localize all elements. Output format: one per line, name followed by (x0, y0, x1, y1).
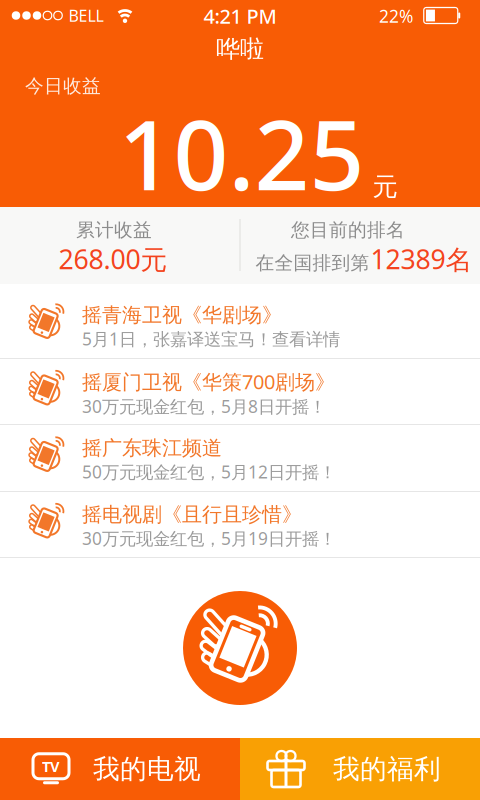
button[interactable]: 摇厦门卫视《华策700剧场》 (0, 359, 480, 425)
staticText: 30万元现金红包，5月19日开摇！ (82, 527, 336, 550)
staticText: 12389名 (370, 241, 472, 277)
staticText: 4:21 PM (203, 3, 276, 29)
staticText: 我的福利 (333, 753, 441, 785)
button[interactable]: 摇广东珠江频道 (0, 425, 480, 492)
staticText: 摇广东珠江频道 (82, 436, 222, 460)
staticText: 268.00元 (58, 241, 167, 277)
staticText: 您目前的排名 (291, 218, 405, 241)
staticText: 在全国排到第 (255, 252, 369, 275)
staticText: 今日收益 (25, 74, 101, 97)
button[interactable]: TV (0, 738, 240, 800)
staticText: 摇电视剧《且行且珍惜》 (82, 502, 302, 527)
staticText: 累计收益 (76, 218, 152, 241)
staticText: 摇厦门卫视《华策700剧场》 (82, 368, 335, 395)
staticText: 哗啦 (216, 34, 264, 64)
staticText: 30万元现金红包，5月8日开摇！ (82, 395, 326, 418)
button[interactable]: 摇青海卫视《华剧场》 (0, 292, 480, 359)
staticText: 22% (379, 4, 413, 27)
staticText: 10.25 (118, 89, 364, 217)
staticText: 摇青海卫视《华剧场》 (82, 303, 282, 327)
staticText: 5月1日，张嘉译送宝马！查看详情 (82, 327, 340, 350)
button[interactable]: 摇一摇 (183, 591, 297, 705)
staticText: 我的电视 (93, 753, 201, 785)
staticText: TV (42, 756, 60, 776)
staticText: 元 (372, 171, 397, 202)
button[interactable]: 我的福利 (240, 738, 480, 800)
staticText: BELL (68, 5, 103, 26)
staticText: 50万元现金红包，5月12日开摇！ (82, 460, 336, 483)
button[interactable]: 摇电视剧《且行且珍惜》 (0, 492, 480, 558)
